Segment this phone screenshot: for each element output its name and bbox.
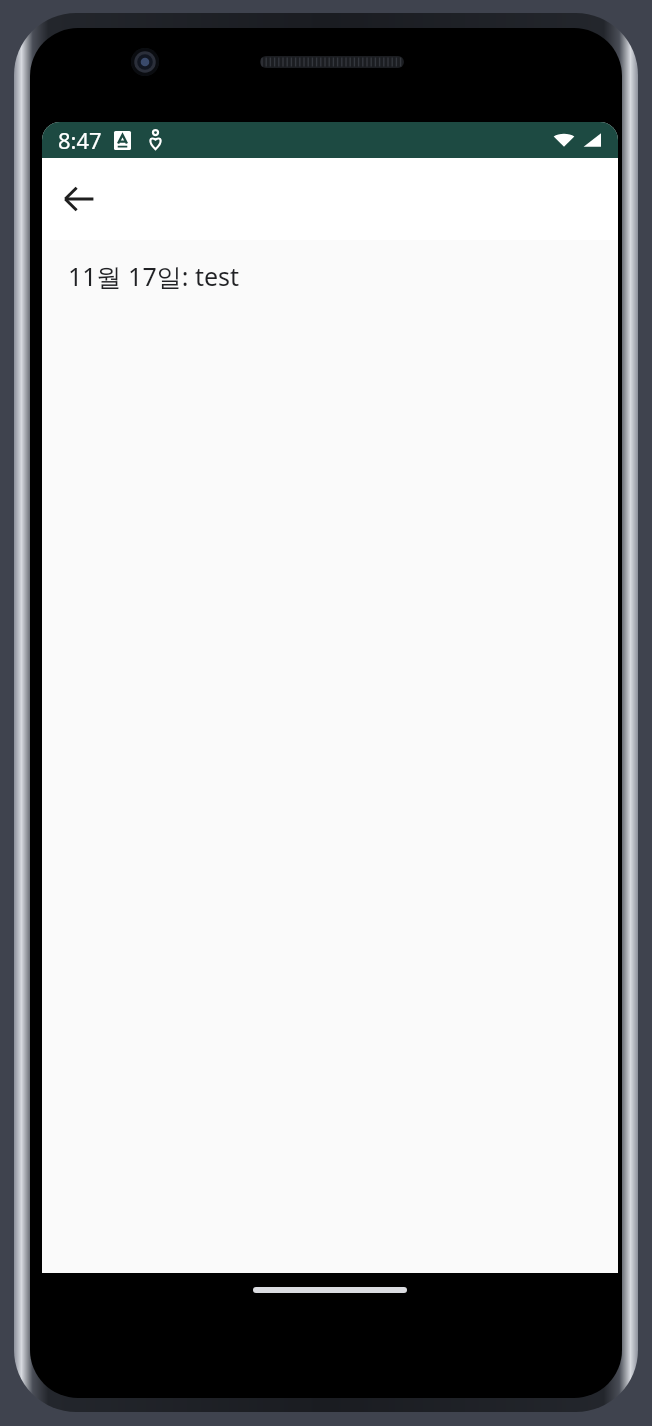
staticText: 8:47	[58, 125, 102, 155]
staticText: 11월 17일: test	[68, 259, 240, 293]
button[interactable]: Back	[55, 175, 103, 223]
